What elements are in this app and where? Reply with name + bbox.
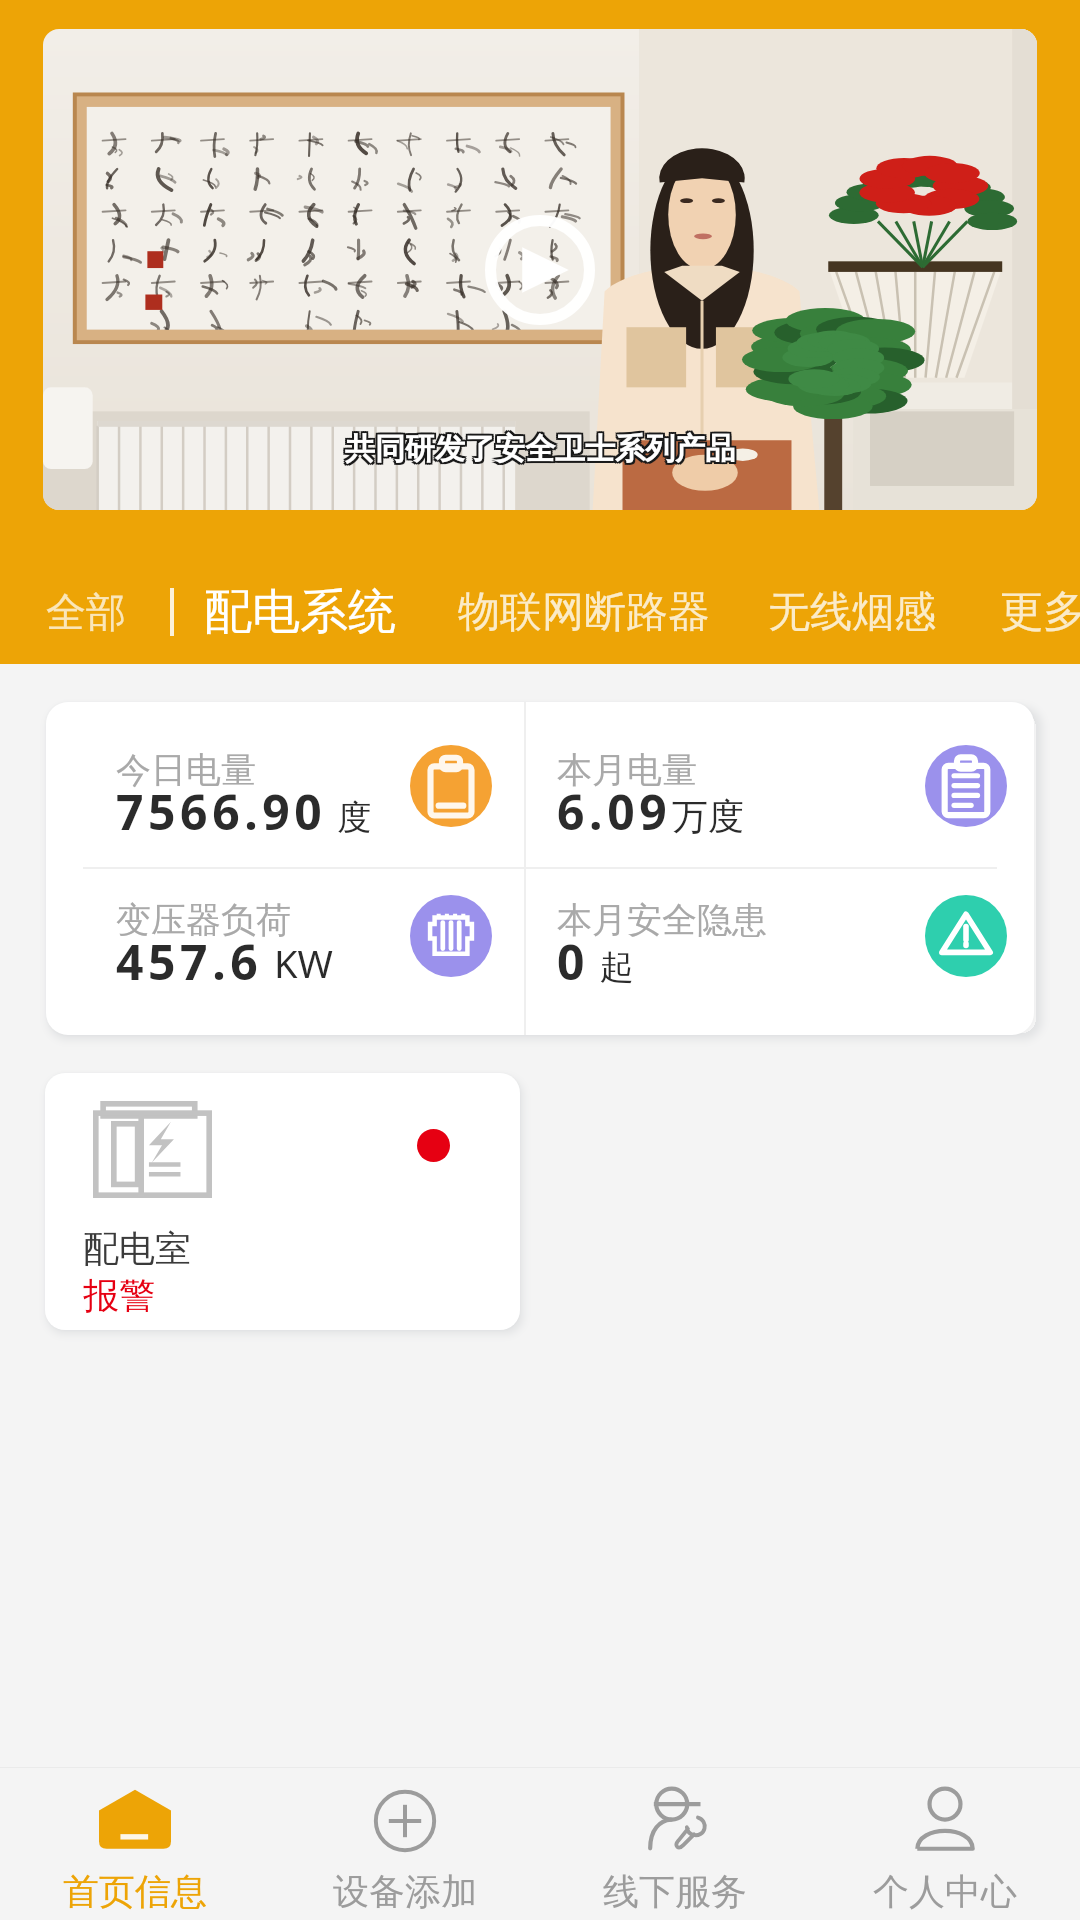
staticText: 共同研发了安全卫士系列产品 <box>345 430 735 468</box>
staticText: 物联网断路器 <box>458 586 710 639</box>
staticText: 共同研发了安全卫士系列产品 <box>343 432 733 470</box>
staticText: 6.09 <box>557 779 672 844</box>
button[interactable]: 设备添加 <box>270 1785 540 1914</box>
staticText: 更多 <box>1000 585 1080 639</box>
staticText: 个人中心 <box>873 1869 1017 1914</box>
staticText: KW <box>274 937 333 989</box>
staticText: 共同研发了安全卫士系列产品 <box>345 432 735 470</box>
staticText: 度 <box>337 796 371 839</box>
button[interactable]: 个人中心 <box>810 1785 1080 1914</box>
staticText: 今日电量 <box>116 748 256 792</box>
staticText: 无线烟感 <box>768 586 936 639</box>
staticText: 0 <box>557 929 590 994</box>
staticText: 共同研发了安全卫士系列产品 <box>343 428 733 466</box>
staticText: 本月安全隐患 <box>557 898 767 942</box>
staticText: 设备添加 <box>333 1869 477 1914</box>
button[interactable]: 变压器负荷 <box>116 869 492 1007</box>
staticText: 457.6 <box>116 929 263 994</box>
staticText: 全部 <box>46 587 126 637</box>
staticText: 变压器负荷 <box>116 898 291 942</box>
button[interactable]: 配电系统 <box>204 582 396 642</box>
staticText: 万度 <box>672 794 744 839</box>
button[interactable]: 物联网断路器 <box>458 586 710 639</box>
staticText: 本月电量 <box>557 748 697 792</box>
button[interactable]: 本月安全隐患 <box>557 869 1007 1007</box>
staticText: 报警 <box>83 1273 155 1318</box>
staticText: 共同研发了安全卫士系列产品 <box>347 432 737 470</box>
button[interactable]: 本月电量 <box>557 702 1007 857</box>
button[interactable]: 更多 <box>1000 585 1080 639</box>
button[interactable]: 线下服务 <box>540 1785 810 1914</box>
staticText: 共同研发了安全卫士系列产品 <box>343 430 733 468</box>
staticText: 共同研发了安全卫士系列产品 <box>345 428 735 466</box>
button[interactable]: 首页信息 <box>0 1785 270 1914</box>
staticText: 7566.90 <box>116 779 327 844</box>
button[interactable]: 全部 <box>46 587 126 637</box>
staticText: 首页信息 <box>63 1869 207 1914</box>
staticText: 线下服务 <box>603 1869 747 1914</box>
staticText: 起 <box>600 946 634 989</box>
button[interactable]: 无线烟感 <box>768 586 936 639</box>
other: Play <box>485 215 595 325</box>
button[interactable]: Play video <box>43 29 1037 510</box>
button[interactable]: 配电室 <box>45 1073 520 1330</box>
staticText: 配电室 <box>83 1226 191 1271</box>
staticText: 配电系统 <box>204 582 396 642</box>
button[interactable]: 今日电量 <box>116 702 492 857</box>
staticText: 共同研发了安全卫士系列产品 <box>347 430 737 468</box>
staticText: 共同研发了安全卫士系列产品 <box>347 428 737 466</box>
